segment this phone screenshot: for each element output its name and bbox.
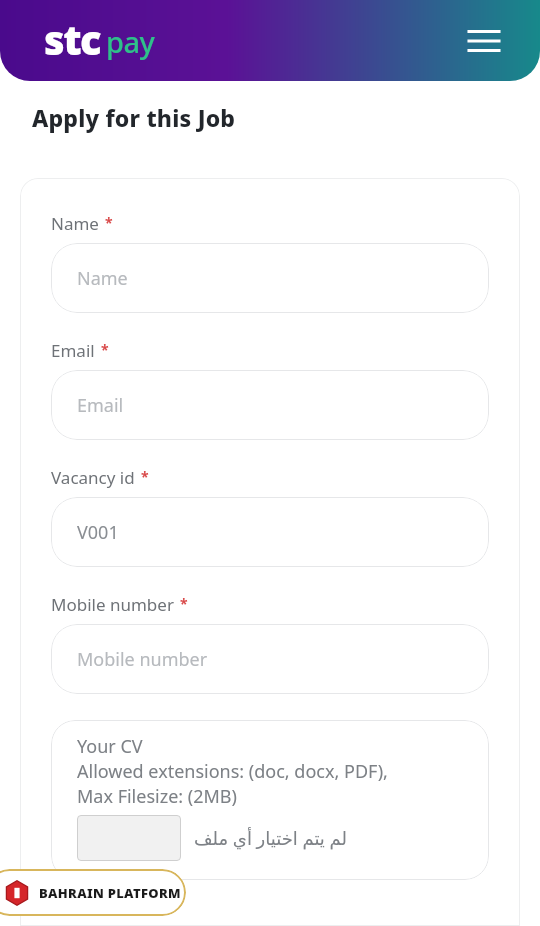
staticText: stc bbox=[44, 12, 101, 66]
button[interactable]: Name bbox=[51, 243, 489, 313]
button[interactable]: Mobile number bbox=[51, 624, 489, 694]
staticText: Mobile number bbox=[77, 647, 208, 672]
staticText: Allowed extensions: (doc, docx, PDF), bbox=[77, 759, 388, 784]
staticText: * bbox=[101, 340, 109, 359]
button[interactable]: Email bbox=[51, 370, 489, 440]
staticText: * bbox=[141, 467, 149, 486]
button[interactable]: Choose file bbox=[77, 815, 181, 861]
staticText: Mobile number bbox=[51, 593, 174, 616]
staticText: Vacancy id bbox=[51, 466, 135, 489]
button[interactable]: V001 bbox=[51, 497, 489, 567]
button[interactable]: Open menu bbox=[462, 19, 506, 63]
staticText: Email bbox=[77, 393, 124, 418]
staticText: Max Filesize: (2MB) bbox=[77, 784, 237, 809]
staticText: Name bbox=[77, 266, 128, 291]
staticText: pay bbox=[106, 22, 155, 61]
staticText: Name bbox=[51, 212, 99, 235]
staticText: V001 bbox=[77, 520, 119, 545]
staticText: BAHRAIN PLATFORM bbox=[39, 884, 181, 902]
staticText: Email bbox=[51, 339, 95, 362]
staticText: لم يتم اختيار أي ملف bbox=[193, 826, 347, 851]
staticText: Apply for this Job bbox=[32, 102, 236, 133]
staticText: Your CV bbox=[77, 734, 143, 759]
staticText: * bbox=[180, 594, 188, 613]
staticText: * bbox=[105, 213, 113, 232]
